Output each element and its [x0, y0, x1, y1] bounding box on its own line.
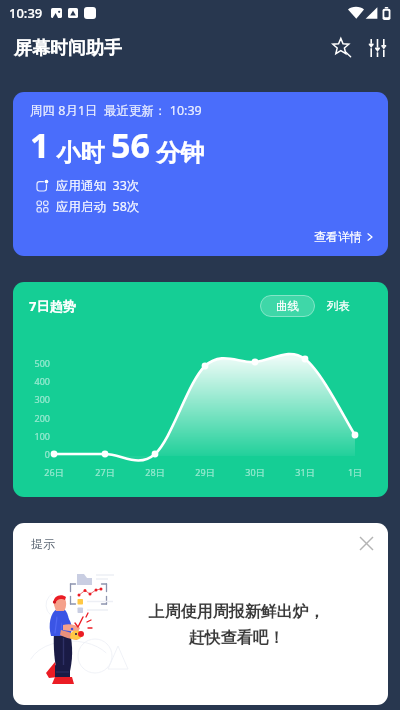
staticText: 屏幕时间助手: [14, 37, 122, 60]
staticText: 28日: [141, 466, 169, 478]
staticText: 应用通知 33次: [56, 177, 140, 194]
button[interactable]: 列表: [323, 295, 354, 317]
button[interactable]: 关闭: [354, 531, 378, 555]
staticText: 1日: [341, 466, 369, 478]
staticText: 上周使用周报新鲜出炉， 赶快查看吧！: [130, 602, 343, 648]
button[interactable]: 曲线: [260, 295, 315, 317]
staticText: 31日: [291, 466, 319, 478]
staticText: 200: [13, 412, 50, 424]
staticText: 27日: [91, 466, 119, 478]
staticText: 10:39: [9, 4, 43, 22]
staticText: 小时: [50, 135, 111, 168]
staticText: 提示: [31, 536, 55, 551]
staticText: 26日: [40, 466, 68, 478]
staticText: 曲线: [276, 299, 299, 313]
staticText: 56: [111, 122, 150, 168]
staticText: 分钟: [150, 135, 205, 168]
staticText: 500: [13, 357, 50, 369]
staticText: 29日: [191, 466, 219, 478]
button[interactable]: 筛选: [361, 32, 393, 64]
button[interactable]: 周四 8月1日 最近更新： 10:39: [13, 92, 388, 256]
staticText: 30日: [241, 466, 269, 478]
staticText: 周四 8月1日 最近更新： 10:39: [30, 102, 202, 119]
button[interactable]: 查看详情: [314, 229, 388, 256]
staticText: 100: [13, 430, 50, 442]
staticText: 7日趋势: [29, 297, 76, 315]
staticText: 400: [13, 375, 50, 387]
staticText: 300: [13, 393, 50, 405]
staticText: 列表: [327, 299, 350, 313]
staticText: 应用启动 58次: [56, 198, 140, 215]
staticText: 1: [30, 122, 50, 168]
staticText: 查看详情: [314, 229, 362, 244]
button[interactable]: 智能搜索: [326, 32, 358, 64]
staticText: 0: [13, 448, 50, 460]
